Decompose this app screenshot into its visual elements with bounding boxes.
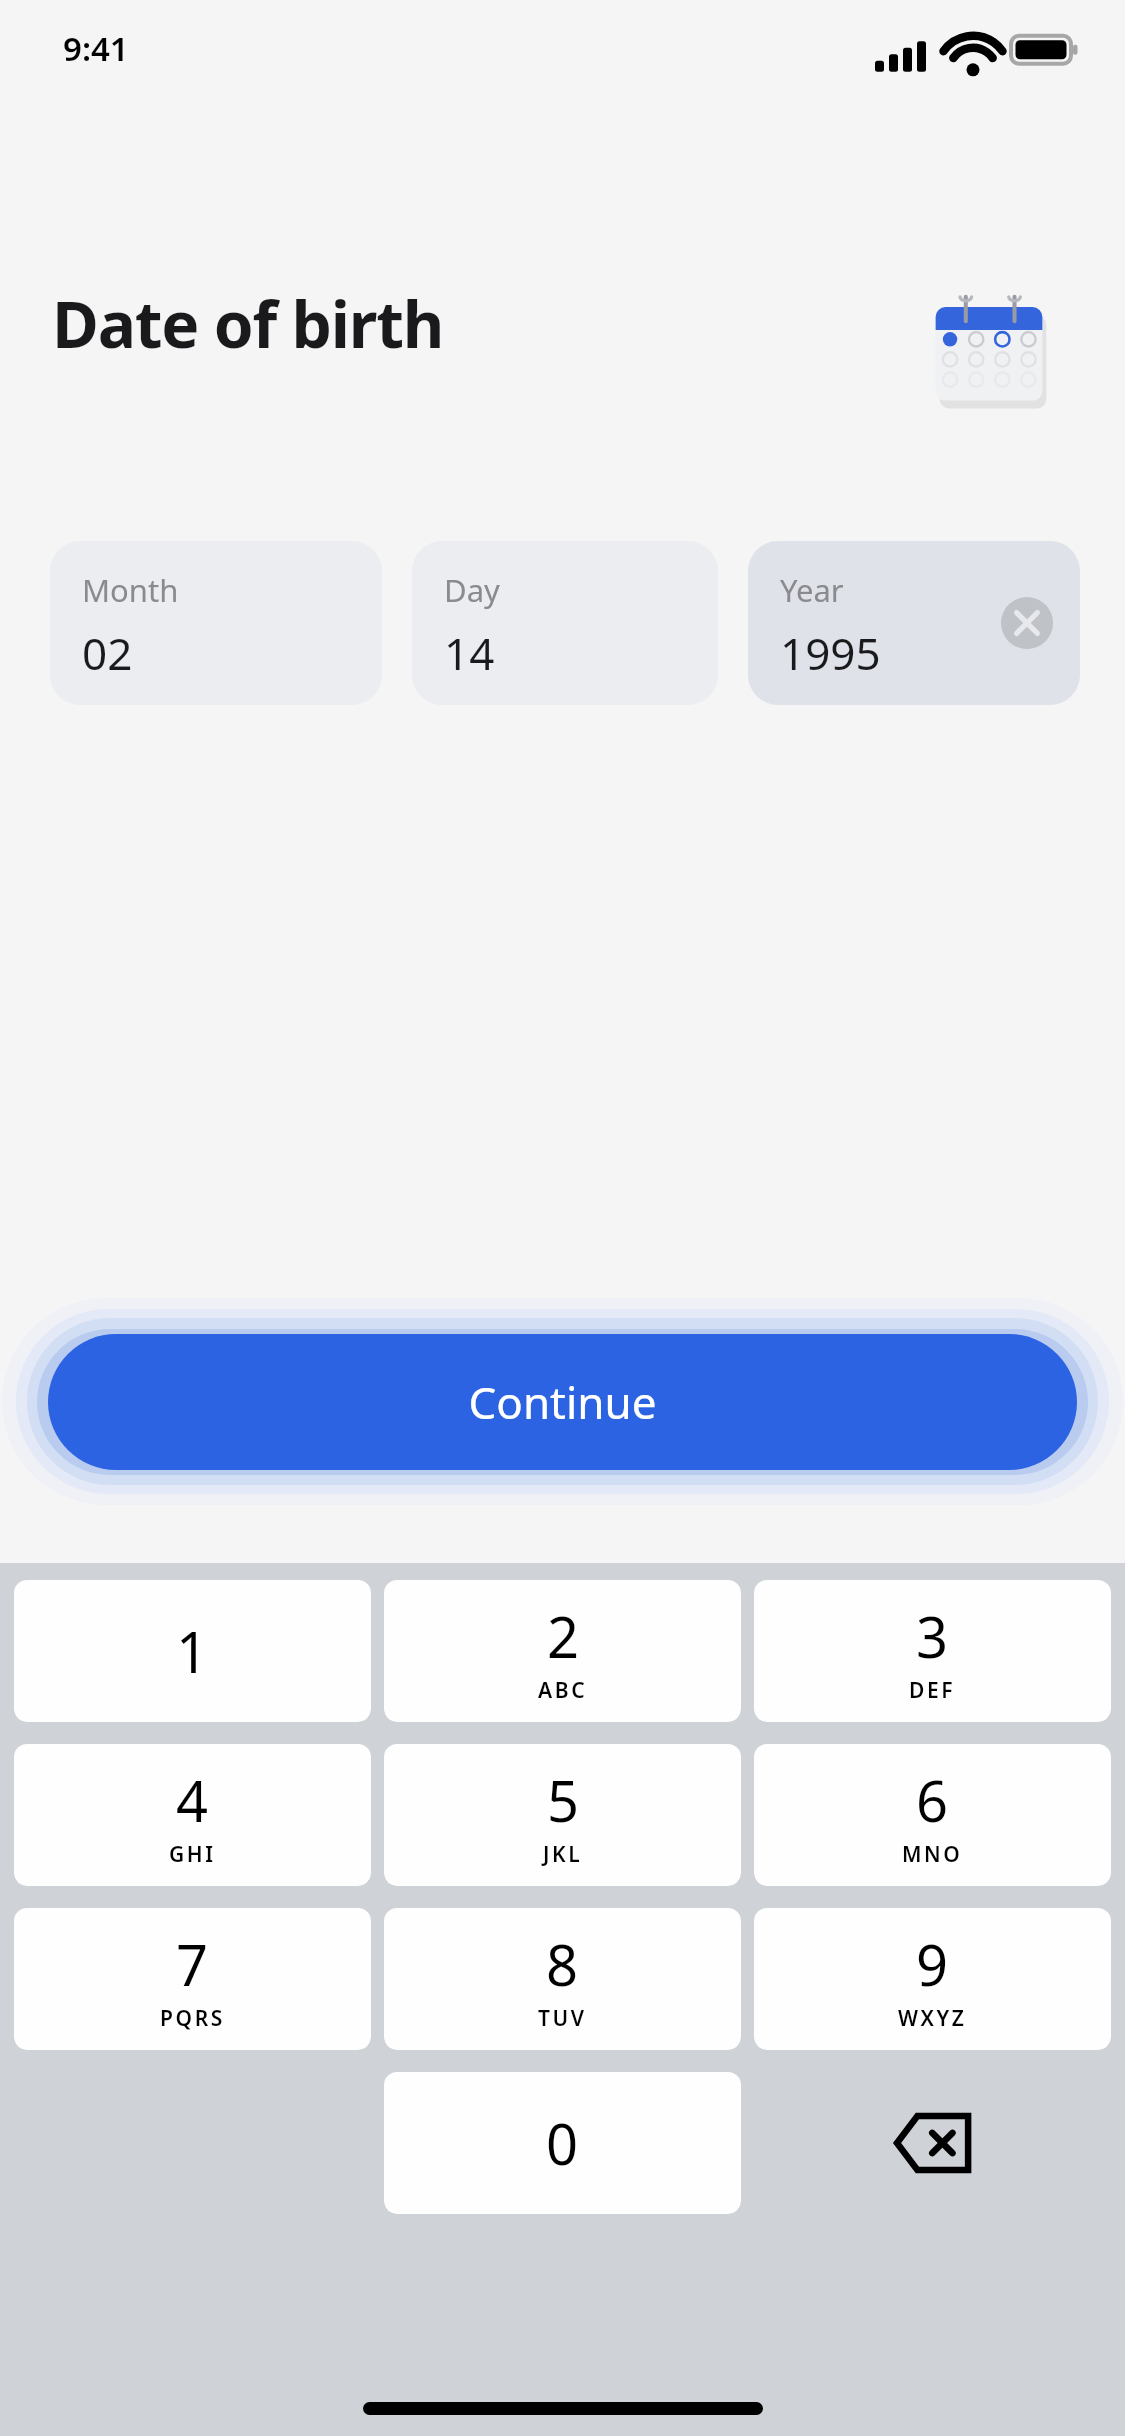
button[interactable]: Year: [748, 541, 1080, 705]
staticText: 8: [546, 1926, 579, 2002]
staticText: GHI: [169, 1840, 216, 1869]
staticText: Continue: [468, 1372, 657, 1432]
button[interactable]: Day: [412, 541, 718, 705]
staticText: 6: [916, 1762, 949, 1838]
button[interactable]: 9: [754, 1908, 1111, 2054]
button[interactable]: 1: [14, 1580, 371, 1726]
staticText: 4: [176, 1762, 209, 1838]
button[interactable]: 2: [384, 1580, 741, 1726]
staticText: 3: [916, 1598, 949, 1674]
staticText: 0: [546, 2105, 579, 2181]
button[interactable]: Continue: [48, 1334, 1077, 1470]
staticText: Date of birth: [52, 280, 444, 367]
staticText: 1: [176, 1613, 209, 1689]
staticText: 5: [547, 1762, 580, 1838]
staticText: 14: [444, 623, 495, 683]
staticText: PQRS: [160, 2004, 225, 2033]
staticText: 1995: [780, 623, 881, 683]
staticText: 2: [547, 1598, 580, 1674]
staticText: Year: [780, 569, 844, 611]
button[interactable]: Clear year: [1001, 597, 1053, 649]
staticText: 7: [176, 1926, 209, 2002]
staticText: JKL: [543, 1840, 583, 1869]
button[interactable]: 3: [754, 1580, 1111, 1726]
button[interactable]: 6: [754, 1744, 1111, 1890]
button[interactable]: 0: [384, 2072, 741, 2218]
button[interactable]: 8: [384, 1908, 741, 2054]
staticText: 9:41: [63, 26, 129, 71]
staticText: MNO: [902, 1840, 963, 1869]
button[interactable]: Month: [50, 541, 382, 705]
button[interactable]: Delete: [754, 2072, 1111, 2214]
button[interactable]: 7: [14, 1908, 371, 2054]
staticText: ABC: [538, 1676, 588, 1705]
staticText: 02: [82, 623, 133, 683]
staticText: Day: [444, 569, 500, 611]
staticText: 9: [916, 1926, 949, 2002]
staticText: Month: [82, 569, 179, 611]
staticText: DEF: [909, 1676, 956, 1705]
staticText: TUV: [538, 2004, 587, 2033]
button[interactable]: 5: [384, 1744, 741, 1890]
button[interactable]: 4: [14, 1744, 371, 1890]
staticText: WXYZ: [898, 2004, 967, 2033]
